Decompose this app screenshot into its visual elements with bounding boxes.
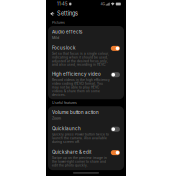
button[interactable]: Back <box>50 11 54 16</box>
button[interactable]: Quick share & edit <box>48 146 124 170</box>
button[interactable]: Volume button action <box>48 106 124 123</box>
staticText: Quickly press Power button twice to laun… <box>52 133 109 144</box>
staticText: Zoom <box>52 116 61 120</box>
staticText: 4G <box>101 2 105 6</box>
staticText: Mild <box>52 36 59 40</box>
staticText: Quick launch <box>52 126 81 131</box>
staticText: Audio effects <box>52 29 82 35</box>
button[interactable]: Focus lock <box>48 43 124 69</box>
staticText: Pictures <box>52 20 65 25</box>
staticText: High efficiency video <box>52 71 101 77</box>
staticText: Quick share & edit <box>52 149 91 155</box>
staticText: Record videos in the high efficiency vid… <box>52 78 110 97</box>
staticText: Swipe up on the preview image in the low… <box>52 156 107 167</box>
staticText: 11:45 <box>57 1 68 6</box>
staticText: Volume button action <box>52 110 99 115</box>
staticText: Useful features <box>52 101 77 105</box>
staticText: Settings <box>57 10 78 17</box>
button[interactable]: Audio effects <box>48 26 124 43</box>
staticText: Set so that focus is a single colour, in… <box>52 52 109 67</box>
button[interactable]: Quick launch <box>48 123 124 146</box>
staticText: Focus lock <box>52 45 75 51</box>
button[interactable]: High efficiency video <box>48 69 124 99</box>
